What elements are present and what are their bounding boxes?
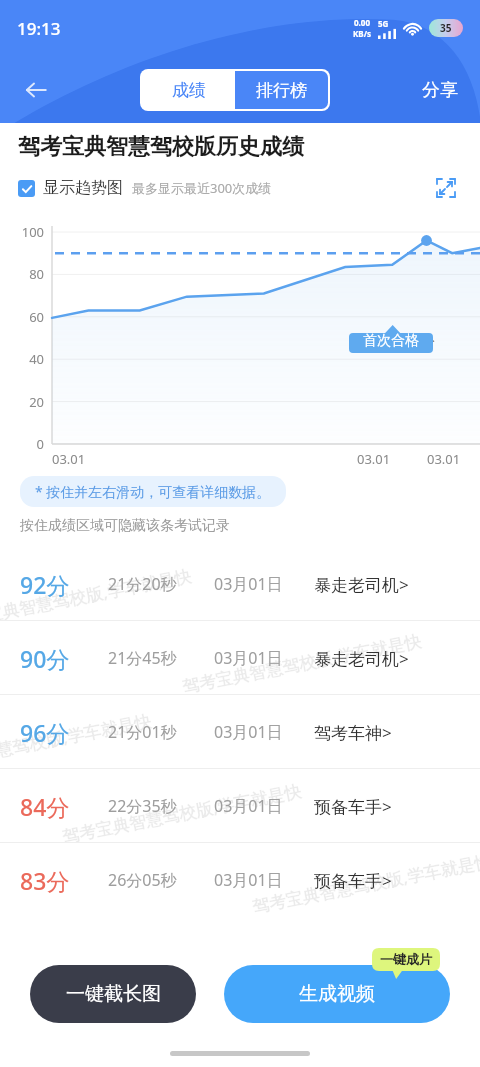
staticText: 03月01日 (214, 795, 314, 817)
staticText: 26分05秒 (108, 869, 214, 891)
staticText: 5G (378, 18, 389, 29)
staticText: 21分45秒 (108, 647, 214, 669)
staticText: 90分 (20, 643, 108, 674)
button[interactable]: 一键截长图 (30, 965, 196, 1023)
button[interactable]: 成绩 (142, 71, 235, 109)
staticText: 驾考宝典智慧驾校版,学车就是快 (0, 564, 193, 633)
staticText: 驾考宝典智慧驾校版历史成绩 (18, 133, 304, 161)
staticText: 显示趋势图 (43, 178, 123, 198)
button[interactable]: 90分 (0, 621, 480, 695)
staticText: 83分 (20, 865, 108, 896)
staticText: 92分 (20, 569, 108, 600)
staticText: 19:13 (17, 17, 61, 40)
staticText: 驾考宝典智慧驾校版,学车就是快 (60, 779, 303, 848)
staticText: 40 (0, 350, 44, 368)
button[interactable]: Back (12, 67, 58, 113)
button[interactable]: 排行榜 (235, 71, 328, 109)
button[interactable]: 84分 (0, 769, 480, 843)
staticText: 驾考宝典智慧驾校版,学车就是快 (180, 629, 423, 698)
staticText: 80 (0, 265, 44, 283)
staticText: 驾考车神> (314, 721, 392, 744)
staticText: 驾考宝典智慧驾校版,学车就是快 (250, 849, 480, 918)
staticText: 0 (0, 435, 44, 453)
staticText: 0.00 (354, 17, 370, 28)
staticText: 20 (0, 393, 44, 411)
staticText: 一键成片 (372, 951, 440, 971)
button[interactable]: 生成视频 (224, 965, 450, 1023)
staticText: 预备车手> (314, 795, 392, 818)
staticText: KB/s (353, 28, 371, 39)
staticText: 生成视频 (299, 982, 375, 1006)
staticText: 暴走老司机> (314, 573, 409, 596)
staticText: 03月01日 (214, 647, 314, 669)
staticText: 首次合格 (349, 332, 433, 353)
button[interactable]: 92分 (0, 547, 480, 621)
staticText: 35 (440, 21, 452, 35)
staticText: 03.01 (52, 450, 86, 468)
button[interactable]: 分享 (412, 71, 468, 110)
staticText: 成绩 (172, 80, 206, 101)
staticText: 排行榜 (256, 80, 307, 101)
staticText: 22分35秒 (108, 795, 214, 817)
staticText: 最多显示最近300次成绩 (132, 179, 272, 197)
button[interactable]: 83分 (0, 843, 480, 917)
staticText: 03.01 (427, 450, 461, 468)
staticText: 暴走老司机> (314, 647, 409, 670)
staticText: 84分 (20, 791, 108, 822)
staticText: 一键截长图 (66, 982, 161, 1006)
staticText: 100 (0, 223, 44, 241)
staticText: 03月01日 (214, 869, 314, 891)
staticText: 21分20秒 (108, 573, 214, 595)
staticText: 96分 (20, 717, 108, 748)
staticText: 分享 (422, 79, 458, 102)
staticText: 21分01秒 (108, 721, 214, 743)
staticText: 60 (0, 308, 44, 326)
staticText: 03.01 (357, 450, 391, 468)
staticText: 按住成绩区域可隐藏该条考试记录 (20, 517, 230, 535)
button[interactable]: 96分 (0, 695, 480, 769)
button[interactable]: Fullscreen (430, 172, 462, 204)
staticText: 03月01日 (214, 573, 314, 595)
button[interactable]: 一键成片 (372, 948, 440, 979)
staticText: 线90分 (388, 331, 436, 351)
staticText: 驾考宝典智慧驾校版,学车就是快 (0, 709, 153, 778)
button[interactable]: 显示趋势图 (18, 178, 123, 198)
staticText: * 按住并左右滑动，可查看详细数据。 (35, 482, 271, 501)
staticText: 预备车手> (314, 869, 392, 892)
staticText: 03月01日 (214, 721, 314, 743)
